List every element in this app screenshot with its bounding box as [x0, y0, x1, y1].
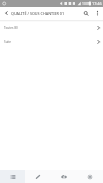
staticText: Toutes (8)	[4, 26, 96, 30]
staticText: QUALITÉ / SOUS CHANTIER 01	[11, 11, 65, 16]
button[interactable]: Camera	[51, 170, 77, 183]
button[interactable]: Search	[80, 7, 91, 20]
staticText: 100%	[82, 1, 91, 6]
button[interactable]: Checklist	[0, 170, 25, 183]
staticText: Suite	[4, 40, 96, 44]
button[interactable]: Back	[0, 7, 12, 20]
button[interactable]: Edit	[25, 170, 51, 183]
button[interactable]: Toutes (8)	[0, 21, 103, 35]
button[interactable]: More options	[91, 7, 103, 20]
button[interactable]: Suite	[0, 35, 103, 49]
staticText: 17:46	[92, 1, 102, 6]
button[interactable]: Settings	[77, 170, 103, 183]
